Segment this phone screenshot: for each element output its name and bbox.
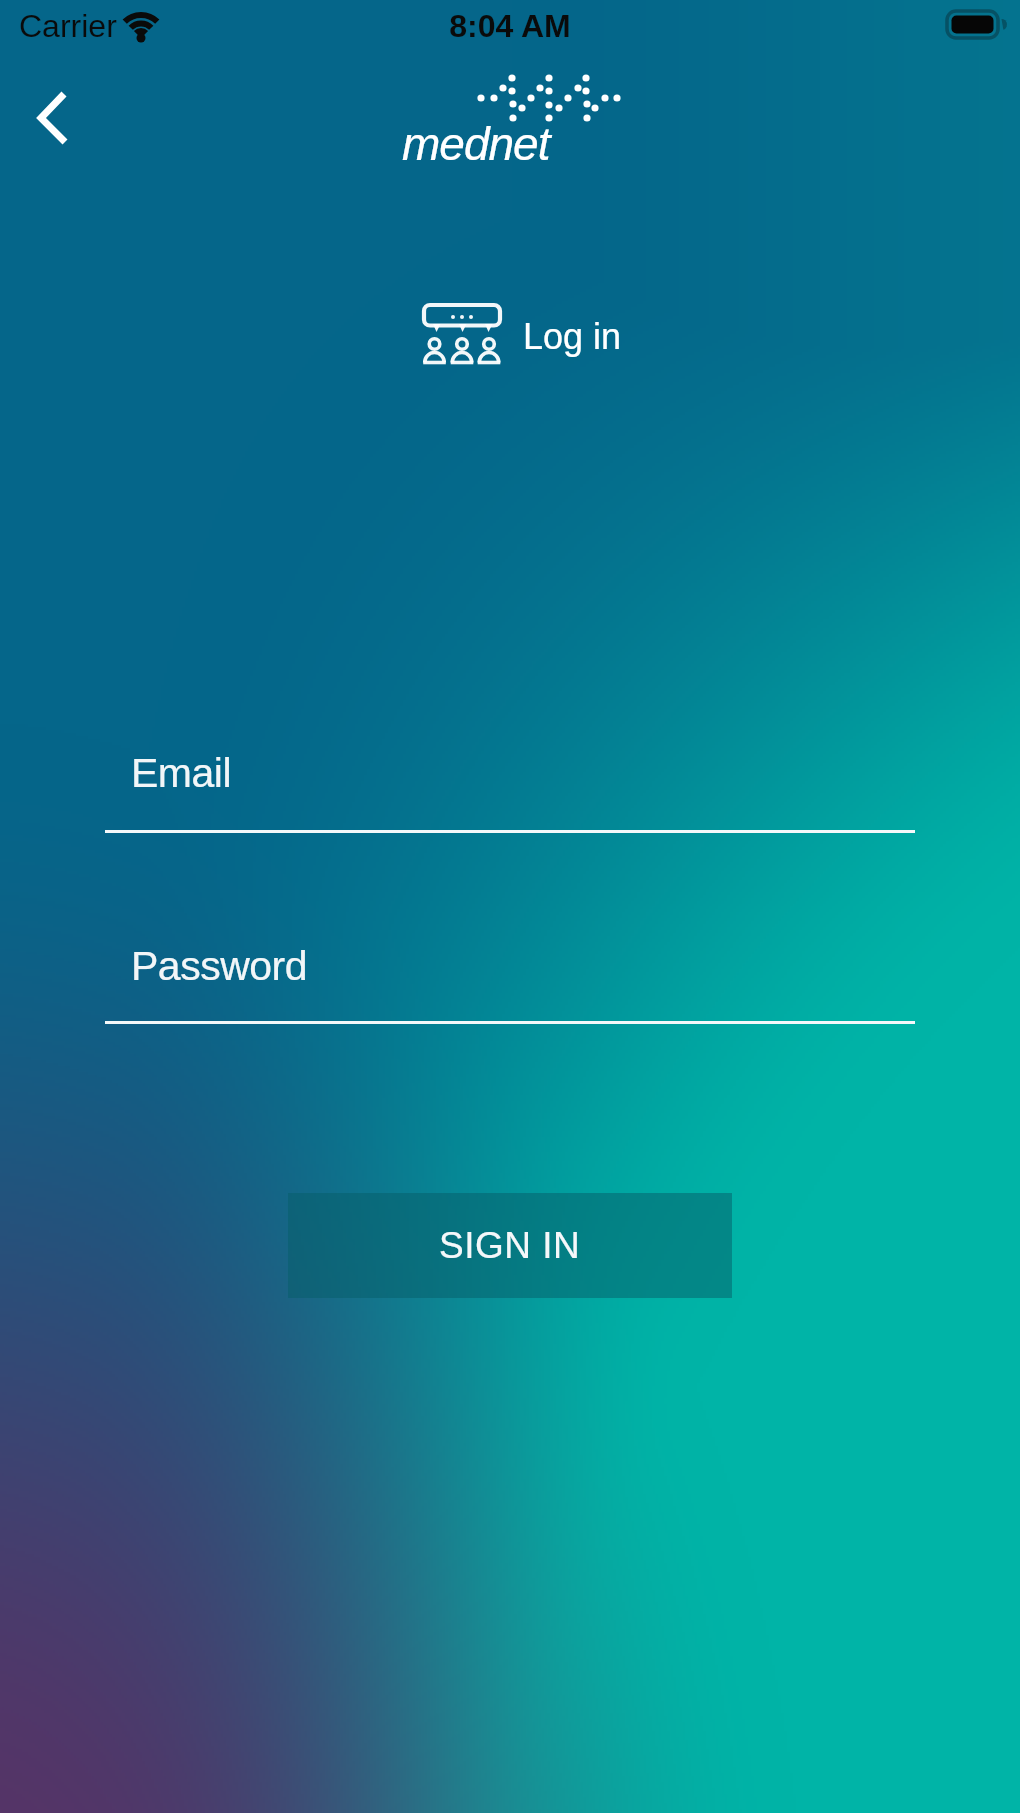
staticText: Password	[131, 943, 308, 989]
staticText: Email	[131, 750, 232, 796]
button[interactable]: SIGN IN	[288, 1193, 732, 1298]
staticText: Log in	[523, 316, 622, 356]
button[interactable]	[16, 80, 86, 155]
staticText: mednet	[402, 118, 550, 169]
button[interactable]: Log in	[410, 292, 630, 376]
staticText: 8:04 AM	[0, 8, 1020, 44]
button[interactable]: Email	[105, 718, 915, 834]
button[interactable]: Password	[105, 910, 915, 1026]
staticText: SIGN IN	[439, 1225, 581, 1266]
staticText: Carrier	[19, 8, 117, 44]
